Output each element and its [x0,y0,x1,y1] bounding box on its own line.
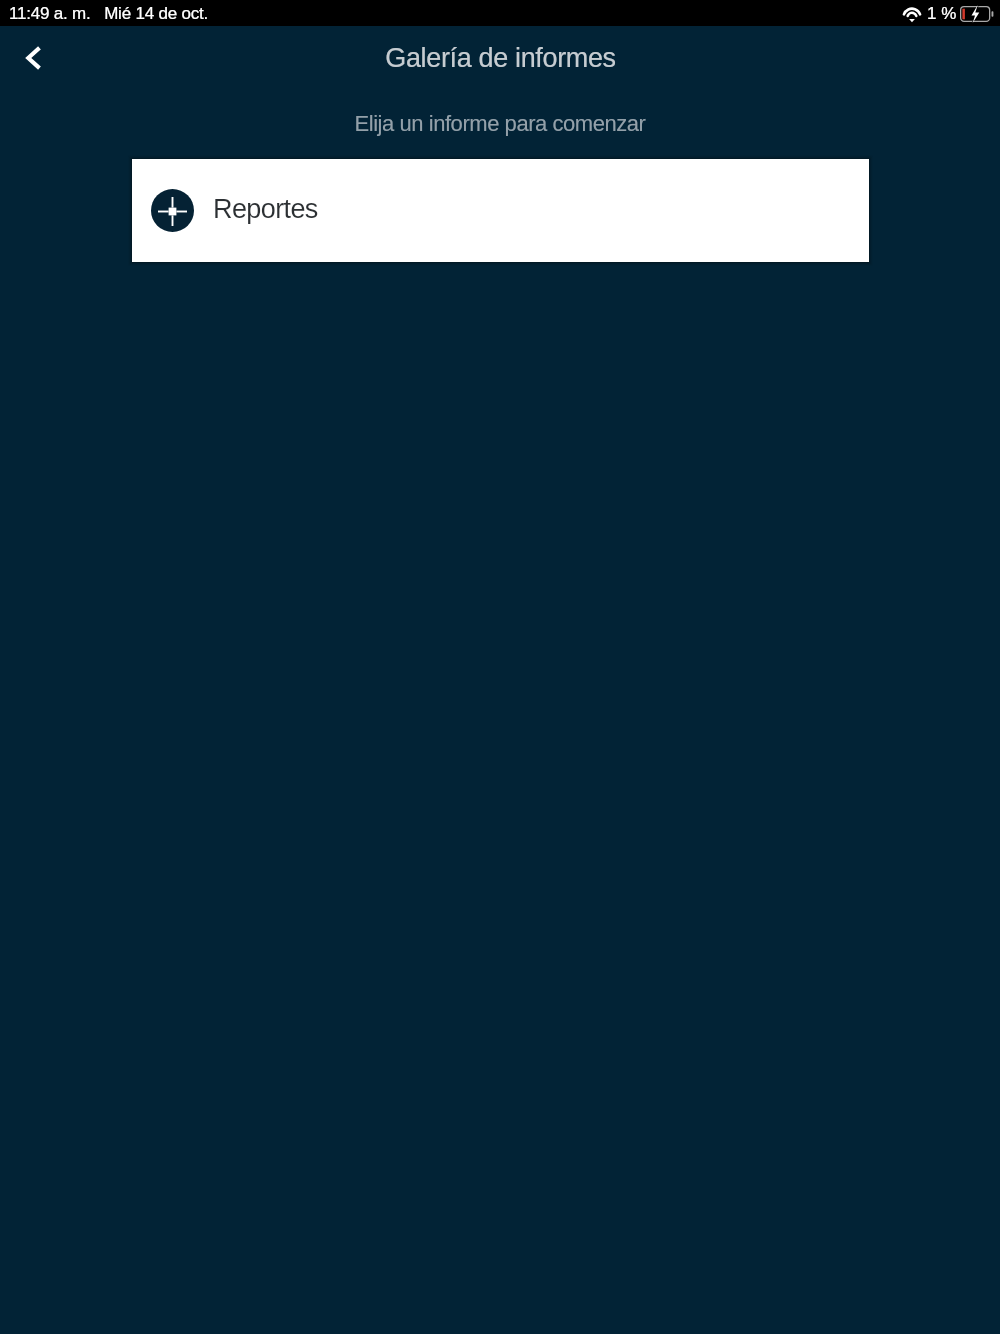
button[interactable]: Reportes [132,159,869,262]
staticText: Reportes [213,194,318,224]
button[interactable]: Back [5,30,61,86]
staticText: 1 % [927,4,957,23]
staticText: 11:49 a. m. Mié 14 de oct. [9,4,209,23]
staticText: Elija un informe para comenzar [0,111,1000,136]
staticText: Galería de informes [385,43,616,73]
